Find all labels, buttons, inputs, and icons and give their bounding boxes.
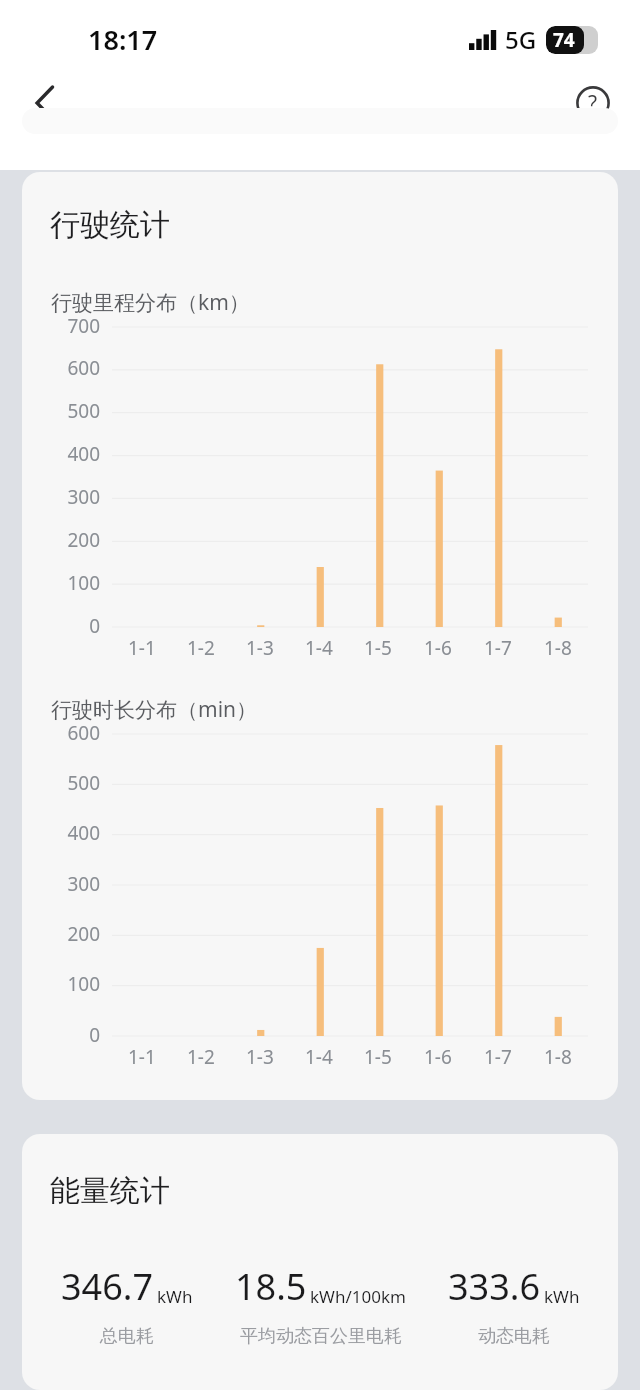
- staticText: 600: [22, 355, 100, 381]
- staticText: 1-5: [364, 635, 392, 661]
- staticText: 行驶时长分布（min）: [51, 695, 258, 724]
- staticText: ?: [588, 89, 598, 118]
- staticText: 74: [553, 27, 575, 53]
- staticText: 1-8: [544, 635, 572, 661]
- staticText: 1-6: [424, 635, 452, 661]
- staticText: 1-2: [187, 1044, 215, 1070]
- staticText: 400: [22, 820, 100, 846]
- staticText: 500: [22, 770, 100, 796]
- staticText: 能量统计: [50, 1172, 170, 1210]
- staticText: 1-4: [305, 635, 333, 661]
- staticText: kWh/100km: [310, 1285, 406, 1308]
- staticText: 300: [22, 484, 100, 510]
- staticText: 200: [22, 921, 100, 947]
- staticText: 0: [22, 613, 100, 639]
- staticText: kWh: [157, 1285, 193, 1308]
- button[interactable]: 能量统计: [22, 1134, 618, 1390]
- staticText: 500: [22, 398, 100, 424]
- staticText: 346.7: [61, 1262, 154, 1311]
- staticText: 1-4: [305, 1044, 333, 1070]
- staticText: 333.6: [448, 1262, 541, 1311]
- staticText: 200: [22, 527, 100, 553]
- staticText: 18.5: [235, 1262, 307, 1311]
- staticText: 平均动态百公里电耗: [240, 1325, 402, 1348]
- staticText: 1-3: [246, 635, 274, 661]
- staticText: 400: [22, 441, 100, 467]
- button[interactable]: 行驶统计: [22, 172, 618, 1100]
- staticText: kWh: [544, 1285, 580, 1308]
- staticText: 总电耗: [100, 1325, 154, 1348]
- staticText: 5G: [505, 23, 537, 56]
- staticText: 1-1: [128, 1044, 156, 1070]
- staticText: 动态电耗: [478, 1325, 550, 1348]
- button[interactable]: Help: [566, 76, 620, 130]
- staticText: 1-8: [544, 1044, 572, 1070]
- staticText: 600: [22, 720, 100, 746]
- staticText: 1-2: [187, 635, 215, 661]
- staticText: 300: [22, 871, 100, 897]
- staticText: 100: [22, 971, 100, 997]
- staticText: 0: [22, 1022, 100, 1048]
- staticText: 18:17: [88, 21, 158, 58]
- staticText: 100: [22, 570, 100, 596]
- staticText: 1-3: [246, 1044, 274, 1070]
- staticText: 1-7: [484, 1044, 512, 1070]
- staticText: 700: [22, 313, 100, 339]
- staticText: 1-5: [364, 1044, 392, 1070]
- staticText: 行驶统计: [50, 206, 170, 244]
- staticText: 1-1: [128, 635, 156, 661]
- staticText: 行驶里程分布（km）: [51, 288, 250, 317]
- button[interactable]: Back: [18, 76, 72, 130]
- staticText: 1-7: [484, 635, 512, 661]
- staticText: 1-6: [424, 1044, 452, 1070]
